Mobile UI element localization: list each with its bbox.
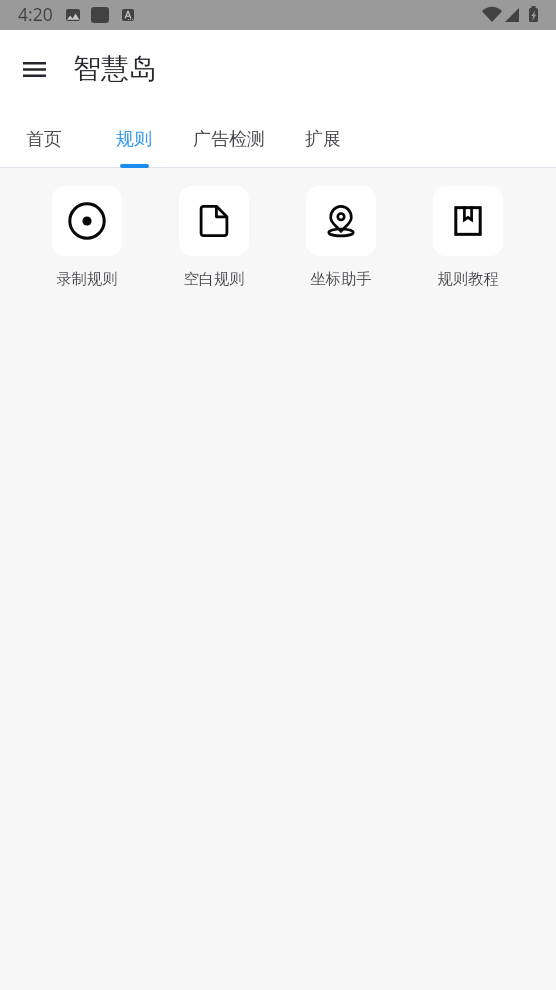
button[interactable]: Open navigation menu xyxy=(11,46,58,93)
button[interactable]: 扩展 xyxy=(278,110,368,167)
staticText: 坐标助手 xyxy=(310,269,372,288)
button[interactable]: 首页 xyxy=(0,110,89,167)
button[interactable]: 规则 xyxy=(89,110,179,167)
staticText: 录制规则 xyxy=(56,269,118,288)
button[interactable]: 空白规则 xyxy=(150,186,277,288)
staticText: 扩展 xyxy=(305,128,341,151)
staticText: 规则 xyxy=(116,128,152,151)
staticText: 规则教程 xyxy=(437,269,499,288)
staticText: 4:20 xyxy=(18,2,53,26)
staticText: 空白规则 xyxy=(183,269,245,288)
staticText: 广告检测 xyxy=(193,128,265,151)
button[interactable]: 广告检测 xyxy=(182,110,276,167)
button[interactable]: 规则教程 xyxy=(404,186,531,288)
staticText: 首页 xyxy=(26,128,62,151)
staticText: 智慧岛 xyxy=(73,51,157,86)
button[interactable]: 坐标助手 xyxy=(277,186,404,288)
button[interactable]: 录制规则 xyxy=(23,186,150,288)
